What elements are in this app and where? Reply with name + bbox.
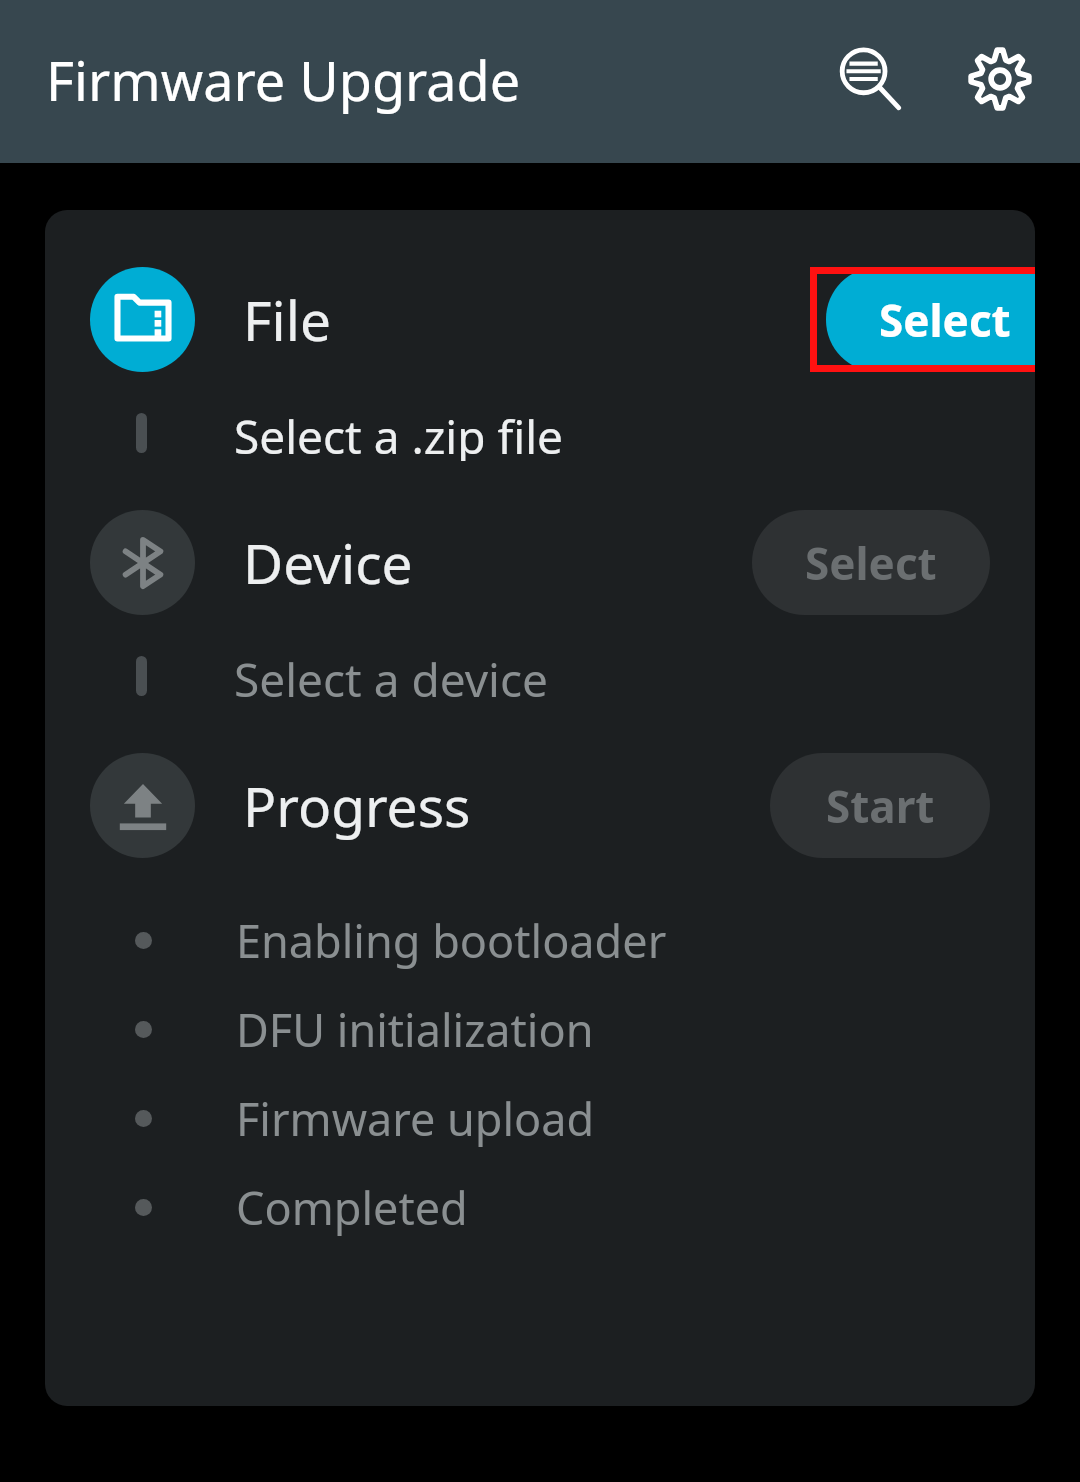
staticText: Start bbox=[826, 776, 935, 836]
staticText: Firmware Upgrade bbox=[46, 43, 521, 117]
staticText: Select a .zip file bbox=[234, 405, 563, 461]
staticText: Select a device bbox=[234, 648, 548, 704]
button[interactable]: Search bbox=[814, 23, 926, 135]
staticText: Device bbox=[243, 525, 413, 600]
staticText: File bbox=[243, 282, 331, 357]
staticText: Select bbox=[805, 533, 937, 593]
button[interactable]: Settings bbox=[944, 23, 1056, 135]
staticText: Progress bbox=[243, 768, 471, 843]
button[interactable]: Start bbox=[770, 753, 990, 858]
staticText: Enabling bootloader bbox=[236, 910, 667, 971]
button[interactable]: Select bbox=[752, 510, 990, 615]
staticText: Completed bbox=[236, 1177, 468, 1238]
staticText: Select bbox=[879, 290, 1011, 350]
button[interactable]: Select bbox=[826, 267, 1035, 372]
staticText: DFU initialization bbox=[236, 999, 594, 1060]
staticText: Firmware upload bbox=[236, 1088, 595, 1149]
